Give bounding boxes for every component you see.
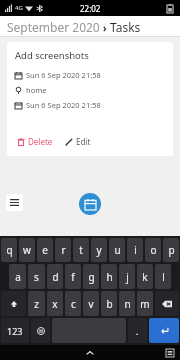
button[interactable]: a [9, 264, 26, 289]
button[interactable]: t [73, 238, 89, 262]
staticText: 4G [15, 4, 23, 12]
button[interactable]: c [65, 291, 81, 316]
button[interactable]: Key [155, 291, 179, 316]
button[interactable]: Key [128, 318, 147, 343]
staticText: i [134, 243, 137, 257]
staticText: n [124, 297, 131, 311]
button[interactable]: y [91, 238, 107, 262]
staticText: c [71, 297, 76, 311]
button[interactable]: w [19, 238, 35, 262]
button[interactable]: September 2020 [7, 19, 100, 35]
button[interactable]: Edit [62, 133, 94, 150]
staticText: g [88, 270, 95, 284]
staticText: home [26, 85, 47, 95]
staticText: Tasks [110, 19, 141, 35]
staticText: b [106, 297, 113, 311]
button[interactable]: u [109, 238, 125, 262]
staticText: v [88, 297, 94, 311]
staticText: s [34, 270, 39, 284]
staticText: j [126, 270, 129, 284]
button[interactable]: d [47, 264, 63, 289]
staticText: o [150, 243, 157, 257]
button[interactable]: i [127, 238, 143, 262]
staticText: e [42, 243, 48, 257]
staticText: Add screenshots [15, 49, 89, 62]
button[interactable]: v [83, 291, 99, 316]
button[interactable]: s [28, 264, 45, 289]
staticText: k [142, 270, 148, 284]
button[interactable]: Key [1, 318, 29, 343]
staticText: u [114, 243, 121, 257]
button[interactable]: Delete [14, 133, 56, 150]
button[interactable]: Key [1, 291, 26, 316]
button[interactable]: z [28, 291, 45, 316]
staticText: . [136, 325, 139, 337]
button[interactable]: Key [31, 318, 50, 343]
button[interactable]: r [55, 238, 71, 262]
button[interactable]: p [163, 238, 179, 262]
button[interactable]: q [1, 238, 17, 262]
staticText: t [79, 243, 83, 257]
staticText: w [23, 243, 31, 257]
staticText: z [34, 297, 39, 311]
button[interactable]: Add screenshots [7, 42, 173, 156]
staticText: Edit [76, 136, 91, 147]
button[interactable]: g [83, 264, 99, 289]
button[interactable]: e [37, 238, 53, 262]
staticText: Sun 6 Sep 2020 21:58 [26, 100, 101, 110]
button[interactable]: Switch keyboard [164, 347, 175, 358]
button[interactable]: m [137, 291, 153, 316]
button[interactable]: j [119, 264, 135, 289]
button[interactable]: b [101, 291, 117, 316]
button[interactable]: Menu [6, 194, 23, 211]
staticText: q [6, 243, 13, 257]
staticText: Sun 6 Sep 2020 21:58 [26, 70, 101, 80]
staticText: r [61, 243, 66, 257]
staticText: a [15, 270, 21, 284]
staticText: x [52, 297, 58, 311]
staticText: h [106, 270, 113, 284]
staticText: 22:02 [80, 3, 101, 14]
button[interactable]: f [65, 264, 81, 289]
button[interactable]: Back [81, 345, 99, 360]
button[interactable]: h [101, 264, 117, 289]
button[interactable]: Key [149, 318, 179, 343]
staticText: › [100, 20, 110, 35]
staticText: f [71, 270, 75, 284]
button[interactable]: l [155, 264, 171, 289]
staticText: y [96, 243, 102, 257]
staticText: d [52, 270, 59, 284]
button[interactable]: o [145, 238, 161, 262]
staticText: 123 [7, 325, 23, 337]
button[interactable]: Add task [79, 193, 101, 215]
staticText: m [140, 297, 150, 311]
button[interactable]: k [137, 264, 153, 289]
staticText: p [168, 243, 175, 257]
button[interactable]: n [119, 291, 135, 316]
button[interactable]: x [47, 291, 63, 316]
staticText: l [162, 270, 165, 284]
staticText: Delete [28, 136, 53, 147]
